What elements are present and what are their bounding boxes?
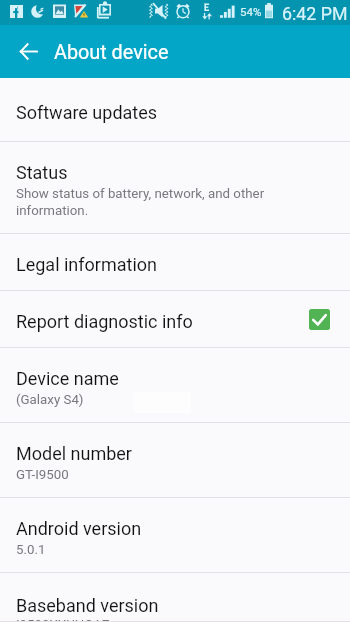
staticText: Baseband version	[16, 595, 159, 616]
button[interactable]: Device name	[0, 348, 350, 423]
staticText: Legal information	[16, 254, 157, 275]
staticText: Report diagnostic info	[16, 311, 193, 332]
staticText: Show status of battery, network, and oth…	[16, 186, 278, 218]
button[interactable]: Navigate up	[0, 25, 48, 78]
button[interactable]: Legal information	[0, 234, 350, 291]
button[interactable]: Model number	[0, 423, 350, 498]
staticText: 5.0.1	[16, 542, 316, 558]
staticText: GT-I9500	[16, 467, 316, 483]
staticText: 54%	[240, 5, 262, 18]
staticText: I9500XXUHOA7	[16, 617, 316, 622]
staticText: Software updates	[16, 102, 158, 123]
button[interactable]: Status	[0, 142, 350, 234]
button[interactable]: Report diagnostic info	[0, 291, 350, 348]
button[interactable]: Baseband version	[0, 573, 350, 622]
staticText: Model number	[16, 443, 132, 464]
button[interactable]: Report diagnostic info checkbox	[309, 309, 330, 330]
staticText: Device name	[16, 368, 119, 389]
staticText: Status	[16, 162, 68, 183]
button[interactable]: Software updates	[0, 78, 350, 142]
staticText: (Galaxy S4)	[16, 392, 316, 408]
staticText: 6:42 PM	[282, 3, 348, 24]
staticText: Android version	[16, 518, 142, 539]
staticText: About device	[54, 41, 169, 64]
button[interactable]: Android version	[0, 498, 350, 573]
